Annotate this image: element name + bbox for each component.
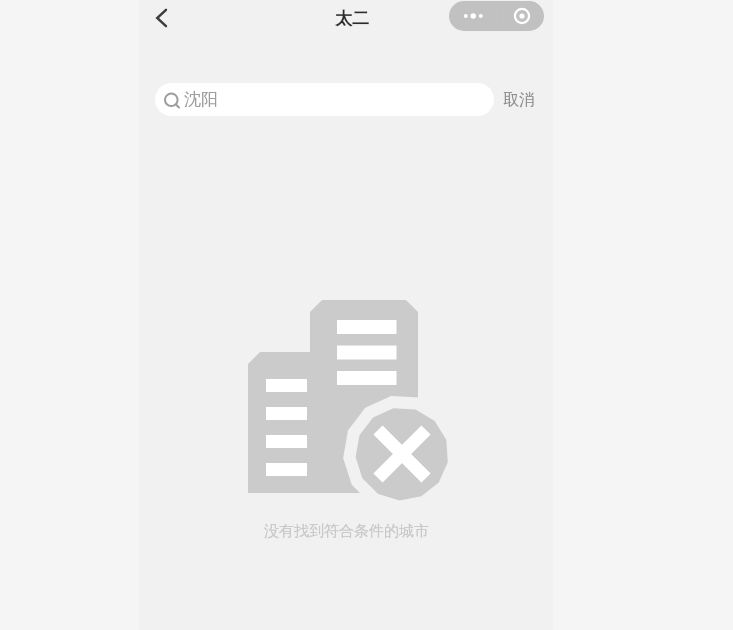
button[interactable]: 沈阳	[155, 83, 494, 116]
staticText: 没有找到符合条件的城市	[264, 522, 429, 541]
staticText: 太二	[335, 8, 369, 29]
button[interactable]: More options	[449, 1, 544, 31]
button[interactable]: 取消	[499, 83, 539, 116]
staticText: 沈阳	[184, 89, 218, 110]
button[interactable]: Back	[139, 0, 183, 35]
staticText: 取消	[503, 90, 535, 110]
